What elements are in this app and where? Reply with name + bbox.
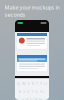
staticText: D [27, 89, 30, 94]
staticText: G [35, 89, 38, 94]
staticText: Q [17, 81, 20, 86]
staticText: R [32, 81, 34, 86]
staticText: V [35, 97, 37, 100]
staticText: A [19, 89, 22, 94]
staticText: B [39, 97, 42, 100]
staticText: H [40, 89, 43, 94]
staticText: Z [22, 97, 24, 100]
staticText: T [36, 81, 38, 86]
staticText: Y [40, 81, 42, 86]
staticText: W [22, 81, 26, 86]
staticText: X [26, 97, 28, 100]
staticText: S [23, 89, 25, 94]
staticText: C [30, 97, 33, 100]
staticText: E [28, 81, 30, 86]
staticText: U [44, 81, 47, 86]
staticText: Make your mockups in seconds [4, 4, 59, 18]
staticText: F [31, 89, 33, 94]
